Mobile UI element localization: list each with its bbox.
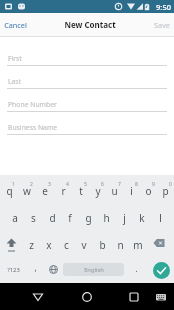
staticText: 2: [30, 181, 33, 188]
staticText: y: [95, 184, 101, 198]
staticText: u: [111, 184, 118, 198]
staticText: 9: [152, 181, 155, 188]
button[interactable]: f: [61, 202, 79, 229]
button[interactable]: [28, 287, 48, 307]
button[interactable]: r: [54, 175, 72, 202]
staticText: w: [23, 184, 31, 198]
staticText: t: [79, 184, 83, 198]
button[interactable]: Save: [150, 18, 174, 32]
button[interactable]: g: [79, 202, 97, 229]
button[interactable]: z: [23, 229, 40, 256]
button[interactable]: d: [43, 202, 61, 229]
staticText: .: [135, 263, 138, 274]
button[interactable]: Phone Number: [0, 89, 174, 112]
button[interactable]: l: [151, 202, 169, 229]
button[interactable]: .: [129, 256, 144, 283]
button[interactable]: q: [0, 175, 18, 202]
button[interactable]: n: [111, 229, 129, 256]
staticText: Last: [8, 77, 22, 86]
button[interactable]: Last: [0, 66, 174, 89]
button[interactable]: a: [5, 202, 24, 229]
staticText: Cancel: [4, 20, 27, 30]
staticText: 4: [66, 181, 69, 188]
button[interactable]: First: [0, 43, 174, 66]
staticText: e: [42, 184, 48, 198]
button[interactable]: i: [123, 175, 140, 202]
button[interactable]: k: [133, 202, 151, 229]
button[interactable]: [147, 229, 174, 256]
button[interactable]: t: [72, 175, 89, 202]
staticText: Save: [154, 20, 170, 30]
button[interactable]: [154, 290, 168, 304]
button[interactable]: e: [36, 175, 54, 202]
staticText: x: [46, 238, 52, 252]
staticText: l: [159, 211, 162, 225]
staticText: s: [31, 211, 36, 225]
button[interactable]: p: [157, 175, 174, 202]
button[interactable]: ?123: [0, 256, 26, 283]
button[interactable]: b: [93, 229, 111, 256]
staticText: a: [12, 211, 18, 225]
staticText: 0: [169, 181, 172, 188]
button[interactable]: h: [97, 202, 115, 229]
staticText: 8: [135, 181, 138, 188]
staticText: z: [29, 238, 34, 252]
staticText: 7: [118, 181, 121, 188]
button[interactable]: s: [24, 202, 43, 229]
staticText: 1: [12, 181, 15, 188]
button[interactable]: [144, 256, 174, 283]
staticText: First: [8, 54, 22, 63]
button[interactable]: m: [129, 229, 147, 256]
staticText: q: [6, 184, 13, 198]
staticText: 6: [101, 181, 104, 188]
staticText: Business Name: [8, 123, 58, 132]
button[interactable]: Business Name: [0, 112, 174, 135]
staticText: b: [99, 238, 106, 252]
button[interactable]: [124, 287, 144, 307]
staticText: j: [123, 211, 126, 225]
button[interactable]: w: [18, 175, 36, 202]
button[interactable]: English: [62, 256, 129, 283]
button[interactable]: [0, 229, 23, 256]
button[interactable]: j: [115, 202, 133, 229]
staticText: New Contact: [64, 19, 116, 30]
staticText: ,: [34, 262, 37, 273]
staticText: r: [61, 184, 66, 198]
staticText: 3: [48, 181, 51, 188]
staticText: Phone Number: [8, 100, 57, 109]
staticText: n: [117, 238, 124, 252]
button[interactable]: c: [57, 229, 75, 256]
staticText: c: [64, 238, 69, 252]
staticText: ?123: [7, 266, 20, 274]
staticText: m: [133, 238, 143, 252]
button[interactable]: ,: [26, 256, 44, 283]
button[interactable]: [44, 256, 62, 283]
button[interactable]: x: [40, 229, 57, 256]
button[interactable]: Cancel: [0, 18, 31, 32]
staticText: d: [49, 211, 56, 225]
staticText: English: [84, 266, 104, 274]
staticText: k: [139, 211, 145, 225]
button[interactable]: v: [75, 229, 93, 256]
button[interactable]: [77, 287, 97, 307]
button[interactable]: o: [140, 175, 157, 202]
staticText: i: [130, 184, 133, 198]
staticText: h: [103, 211, 110, 225]
staticText: g: [85, 211, 92, 225]
staticText: v: [81, 238, 87, 252]
staticText: f: [68, 211, 72, 225]
button[interactable]: y: [89, 175, 106, 202]
staticText: 5: [84, 181, 87, 188]
staticText: o: [145, 184, 152, 198]
staticText: 9:50: [156, 2, 171, 12]
button[interactable]: u: [106, 175, 123, 202]
staticText: p: [162, 184, 169, 198]
